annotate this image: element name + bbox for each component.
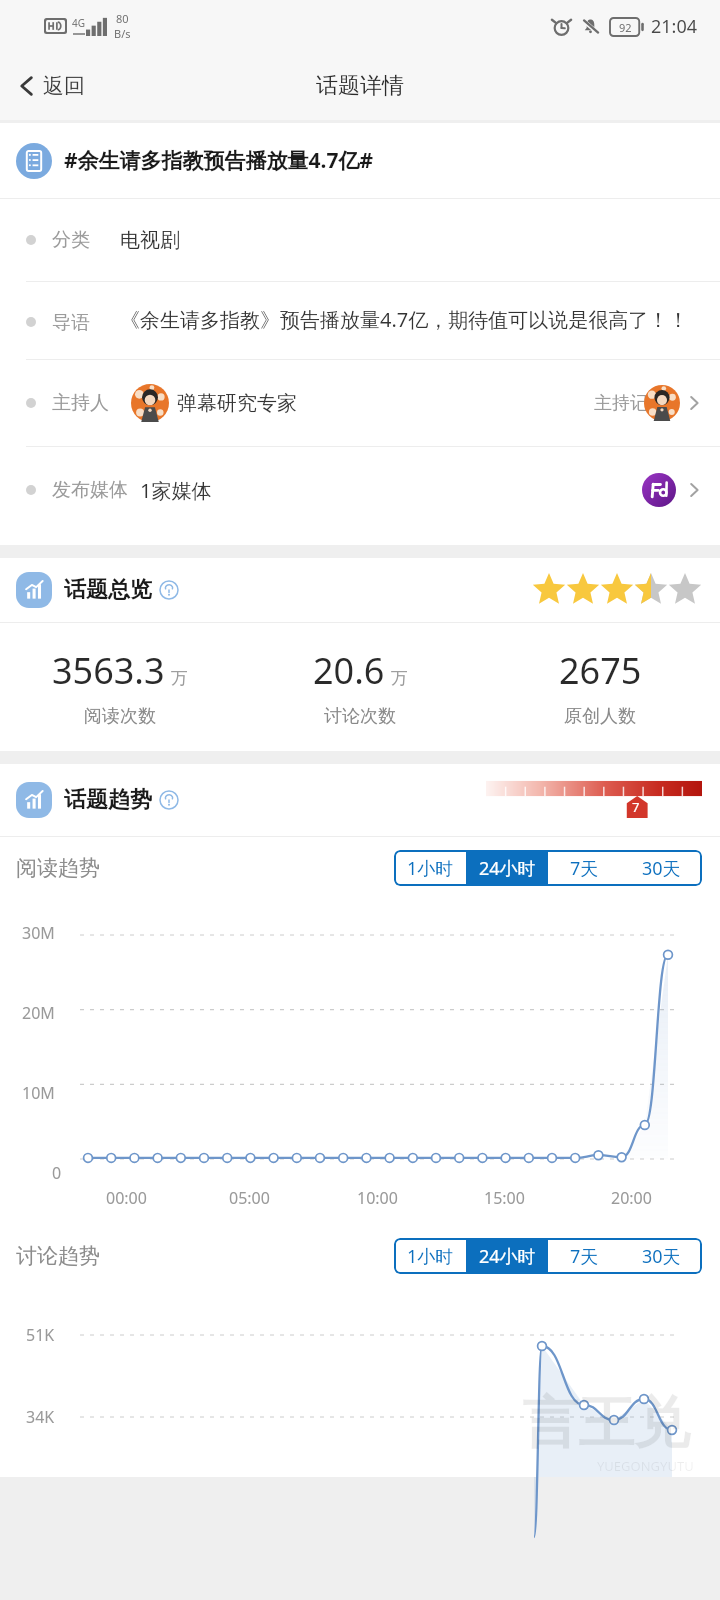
button[interactable]: 7天	[548, 850, 620, 886]
staticText: 万	[391, 668, 408, 689]
staticText: 1家媒体	[140, 477, 212, 504]
staticText: 4G	[72, 16, 85, 30]
staticText: 92	[619, 20, 632, 35]
button[interactable]: 3563.3	[0, 623, 240, 751]
button[interactable]: 1小时	[394, 850, 466, 886]
staticText: 话题总览	[64, 576, 152, 604]
staticText: 00:00	[106, 1187, 147, 1209]
staticText: 2675	[559, 646, 642, 695]
staticText: B/s	[114, 26, 131, 41]
button[interactable]: 30天	[620, 1238, 702, 1274]
staticText: 30天	[642, 1244, 681, 1269]
other: 帮助	[159, 580, 179, 600]
staticText: 7天	[570, 1244, 599, 1269]
staticText: 主持记录	[594, 392, 666, 415]
staticText: 阅读趋势	[16, 855, 100, 881]
staticText: 21:04	[651, 14, 698, 39]
staticText: 1小时	[407, 856, 454, 881]
staticText: 7	[632, 798, 640, 816]
button[interactable]: 20.6	[240, 623, 480, 751]
staticText: 发布媒体	[52, 478, 128, 502]
staticText: 7天	[570, 856, 599, 881]
staticText: 30天	[642, 856, 681, 881]
staticText: 34K	[26, 1406, 55, 1428]
staticText: 分类	[52, 228, 90, 252]
staticText: YUEGONGYUTU	[597, 1457, 694, 1475]
staticText: 话题详情	[316, 72, 404, 100]
staticText: 20:00	[611, 1187, 652, 1209]
staticText: 20M	[22, 1002, 55, 1024]
staticText: #余生请多指教预告播放量4.7亿#	[64, 146, 374, 175]
staticText: 导语	[52, 311, 90, 335]
button[interactable]: 30天	[620, 850, 702, 886]
staticText: 24小时	[479, 856, 536, 881]
staticText: 弹幕研究专家	[177, 391, 297, 416]
staticText: 万	[171, 668, 188, 689]
button[interactable]: 2675	[480, 623, 720, 751]
staticText: 24小时	[479, 1244, 536, 1269]
staticText: 主持人	[52, 391, 109, 415]
staticText: 《余生请多指教》预告播放量4.7亿，期待值可以说是很高了！！	[120, 306, 689, 333]
button[interactable]: 7天	[548, 1238, 620, 1274]
staticText: 80	[116, 11, 129, 26]
staticText: 0	[52, 1162, 62, 1184]
staticText: 讨论次数	[324, 705, 396, 728]
button[interactable]: 返回	[0, 52, 101, 120]
button[interactable]: 主持人	[0, 360, 720, 446]
staticText: 20.6	[313, 646, 385, 695]
staticText: 10:00	[357, 1187, 398, 1209]
staticText: 原创人数	[564, 705, 636, 728]
staticText: 话题趋势	[64, 786, 152, 814]
button[interactable]: 24小时	[466, 850, 548, 886]
button[interactable]: 发布媒体	[0, 447, 720, 533]
staticText: 30M	[22, 922, 55, 944]
button[interactable]: 话题总览	[0, 558, 720, 622]
staticText: 阅读次数	[84, 705, 156, 728]
staticText: 言王兑	[522, 1388, 690, 1459]
button[interactable]: 24小时	[466, 1238, 548, 1274]
button[interactable]: #余生请多指教预告播放量4.7亿#	[0, 123, 720, 198]
staticText: 05:00	[229, 1187, 270, 1209]
staticText: 51K	[26, 1324, 55, 1346]
staticText: 讨论趋势	[16, 1243, 100, 1269]
staticText: 电视剧	[120, 228, 180, 253]
staticText: 10M	[22, 1082, 55, 1104]
staticText: 返回	[43, 73, 85, 99]
staticText: 15:00	[484, 1187, 525, 1209]
staticText: 1小时	[407, 1244, 454, 1269]
other: 帮助	[159, 790, 179, 810]
button[interactable]: 1小时	[394, 1238, 466, 1274]
staticText: 3563.3	[52, 646, 165, 695]
